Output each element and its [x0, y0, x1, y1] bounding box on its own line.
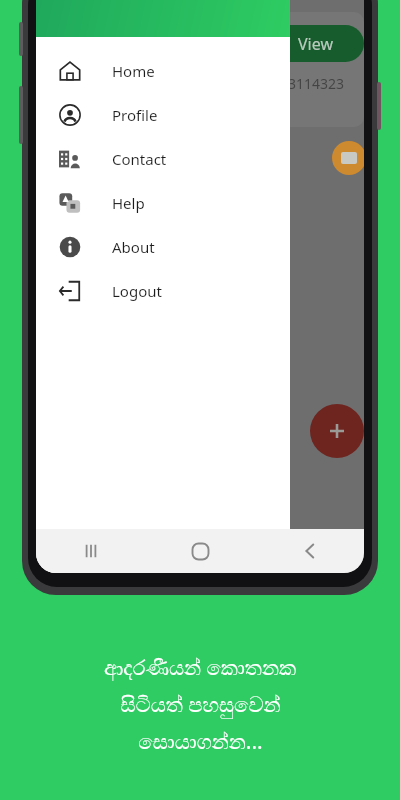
- staticText: Logout: [112, 281, 162, 301]
- staticText: සිටියත් පහසුවෙන්: [120, 690, 281, 719]
- button[interactable]: Profile: [36, 93, 290, 137]
- button[interactable]: About: [36, 225, 290, 269]
- button[interactable]: Recents: [36, 529, 146, 573]
- staticText: ආදරණීයන් කොතනක: [104, 653, 296, 682]
- button[interactable]: View: [268, 25, 364, 62]
- staticText: Contact: [112, 149, 167, 169]
- staticText: සොයාගන්න...: [138, 727, 263, 756]
- staticText: Profile: [112, 105, 158, 125]
- button[interactable]: Media: [332, 141, 364, 175]
- staticText: Home: [112, 61, 155, 81]
- button[interactable]: Back: [255, 529, 364, 573]
- button[interactable]: Home: [36, 49, 290, 93]
- staticText: View: [298, 33, 334, 55]
- staticText: 0703114323: [264, 74, 345, 93]
- button[interactable]: Add: [310, 404, 364, 458]
- button[interactable]: Home: [146, 529, 255, 573]
- staticText: About: [112, 237, 155, 257]
- button[interactable]: Help: [36, 181, 290, 225]
- button[interactable]: Logout: [36, 269, 290, 313]
- staticText: Help: [112, 193, 145, 213]
- button[interactable]: Contact: [36, 137, 290, 181]
